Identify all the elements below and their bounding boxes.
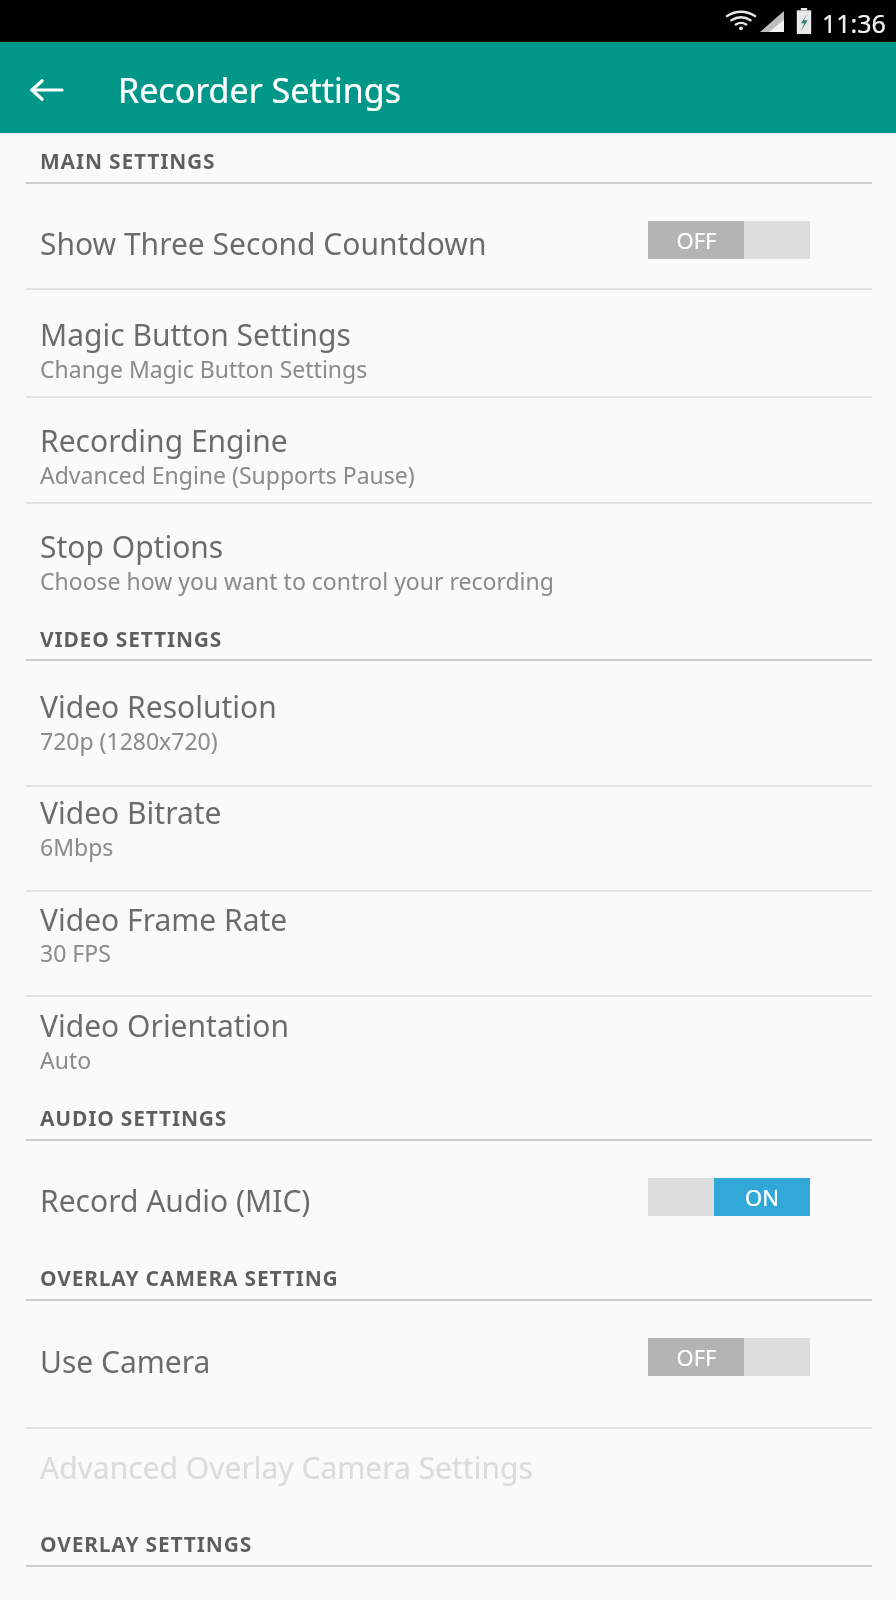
- button[interactable]: [0, 290, 896, 396]
- staticText: OVERLAY SETTINGS: [40, 1530, 253, 1559]
- staticText: Show Three Second Countdown: [40, 223, 487, 264]
- button[interactable]: [0, 504, 896, 610]
- staticText: Stop Options: [40, 526, 224, 567]
- staticText: Use Camera: [40, 1341, 211, 1382]
- staticText: VIDEO SETTINGS: [40, 625, 223, 654]
- button[interactable]: [0, 892, 896, 996]
- staticText: Choose how you want to control your reco…: [40, 565, 554, 596]
- button[interactable]: [0, 1429, 896, 1529]
- button[interactable]: [0, 1141, 896, 1247]
- staticText: Video Bitrate: [40, 792, 222, 833]
- button[interactable]: [0, 1301, 896, 1407]
- button[interactable]: OFF: [648, 221, 810, 259]
- staticText: 6Mbps: [40, 831, 114, 862]
- staticText: MAIN SETTINGS: [40, 147, 216, 176]
- staticText: Advanced Overlay Camera Settings: [40, 1447, 533, 1488]
- button[interactable]: [0, 184, 896, 288]
- button[interactable]: [0, 398, 896, 504]
- staticText: 720p (1280x720): [40, 725, 218, 756]
- staticText: Recorder Settings: [118, 67, 401, 113]
- staticText: Record Audio (MIC): [40, 1180, 311, 1221]
- button[interactable]: [0, 997, 896, 1101]
- staticText: AUDIO SETTINGS: [40, 1104, 228, 1133]
- button[interactable]: ON: [648, 1178, 810, 1216]
- button[interactable]: OFF: [648, 1338, 810, 1376]
- staticText: Video Orientation: [40, 1005, 289, 1046]
- staticText: 11:36: [822, 6, 886, 40]
- staticText: Change Magic Button Settings: [40, 353, 368, 384]
- staticText: 30 FPS: [40, 937, 111, 968]
- staticText: Video Frame Rate: [40, 899, 288, 940]
- staticText: OVERLAY CAMERA SETTING: [40, 1264, 339, 1293]
- staticText: ON: [745, 1182, 779, 1212]
- staticText: OFF: [676, 225, 717, 255]
- button[interactable]: [0, 661, 896, 767]
- staticText: Video Resolution: [40, 686, 277, 727]
- staticText: Auto: [40, 1044, 92, 1075]
- staticText: OFF: [676, 1342, 717, 1372]
- button[interactable]: Back: [18, 66, 74, 114]
- staticText: Magic Button Settings: [40, 314, 351, 355]
- staticText: Recording Engine: [40, 420, 288, 461]
- button[interactable]: [0, 787, 896, 891]
- staticText: Advanced Engine (Supports Pause): [40, 459, 415, 490]
